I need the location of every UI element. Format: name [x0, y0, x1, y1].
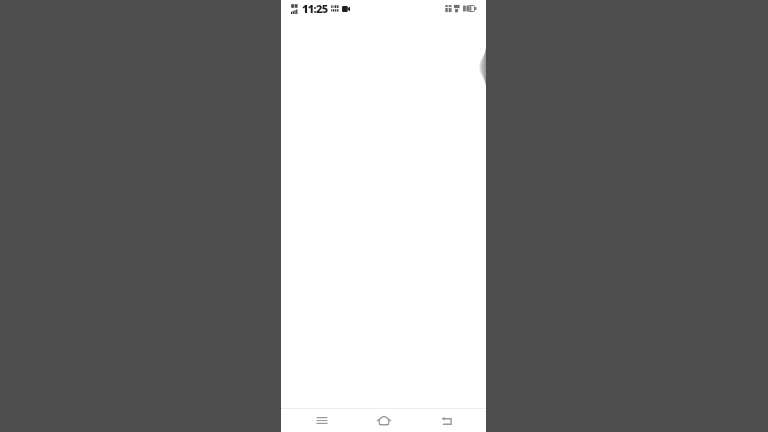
button[interactable]: Open side panel — [477, 46, 486, 88]
button[interactable]: Recent apps — [300, 409, 344, 432]
button[interactable]: Home — [362, 409, 406, 432]
button[interactable]: Back — [424, 409, 468, 432]
staticText: 11:25 — [302, 1, 328, 16]
